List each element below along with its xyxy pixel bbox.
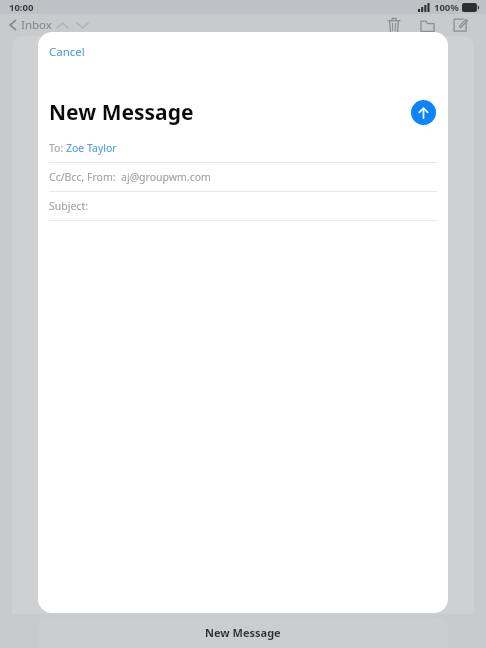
staticText: Cc/Bcc, From: aj@groupwm.com	[49, 170, 211, 184]
staticText: Inbox	[21, 17, 52, 33]
button[interactable]: Delete	[379, 14, 409, 36]
staticText: Cancel	[49, 44, 85, 60]
button[interactable]: Previous message	[52, 15, 72, 35]
button[interactable]: New Message	[38, 617, 448, 648]
staticText: To: Zoe Taylor	[49, 141, 117, 155]
button[interactable]: Subject:	[38, 192, 448, 221]
staticText: New Message	[49, 98, 194, 127]
button[interactable]: Inbox	[7, 15, 54, 35]
button[interactable]: To: Zoe Taylor	[38, 134, 448, 163]
button[interactable]: Cc/Bcc, From: aj@groupwm.com	[38, 163, 448, 192]
staticText: 10:00	[9, 1, 34, 14]
staticText: New Message	[205, 625, 281, 640]
staticText: 100%	[434, 1, 459, 14]
button[interactable]: Cancel	[41, 40, 93, 64]
button[interactable]: Send	[411, 100, 436, 125]
button[interactable]: Compose	[445, 14, 475, 36]
button[interactable]: Next message	[72, 15, 92, 35]
button[interactable]: Move to folder	[412, 14, 442, 36]
staticText: Subject:	[49, 199, 88, 213]
